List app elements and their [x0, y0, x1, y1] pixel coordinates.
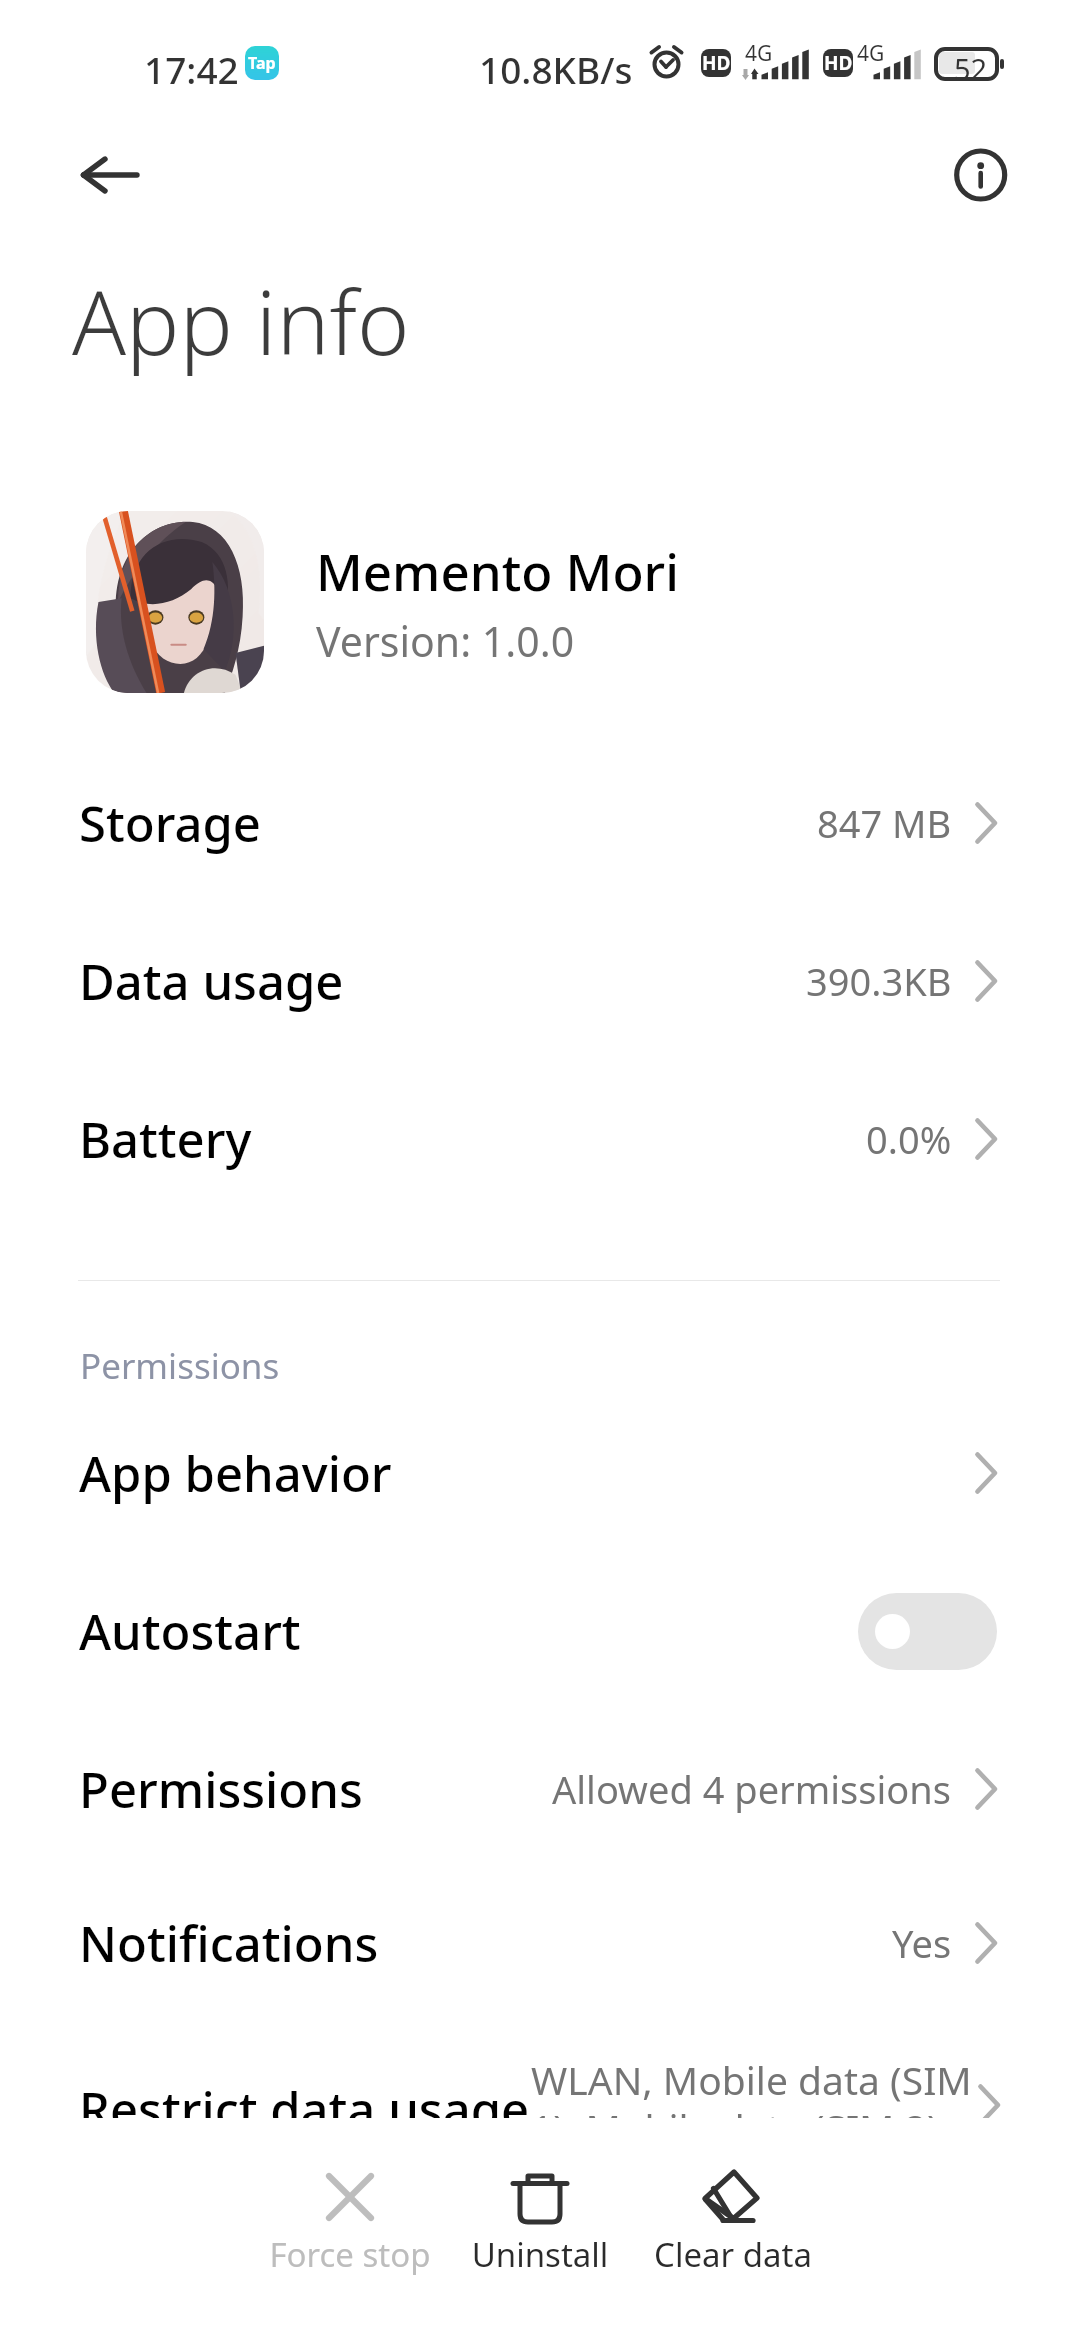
staticText: 4G: [745, 39, 773, 68]
staticText: 17:42: [144, 44, 239, 94]
button[interactable]: Battery: [0, 1060, 1080, 1218]
staticText: Force stop: [255, 2232, 445, 2277]
button[interactable]: Uninstall: [445, 2158, 635, 2308]
staticText: 0.0%: [866, 1113, 952, 1165]
button[interactable]: Clear data: [638, 2158, 828, 2308]
staticText: Notifications: [79, 1910, 379, 1977]
staticText: App behavior: [79, 1440, 392, 1507]
button[interactable]: Autostart: [0, 1552, 1080, 1710]
staticText: 390.3KB: [806, 955, 952, 1007]
staticText: HD: [824, 50, 853, 76]
button[interactable]: App details: [949, 143, 1013, 207]
button[interactable]: Permissions: [0, 1710, 1080, 1868]
staticText: Permissions: [79, 1756, 363, 1823]
staticText: Permissions: [80, 1342, 280, 1390]
staticText: Data usage: [79, 948, 344, 1015]
staticText: Yes: [892, 1917, 952, 1969]
staticText: 52: [951, 49, 990, 88]
staticText: Clear data: [638, 2232, 828, 2277]
button[interactable]: Notifications: [0, 1864, 1080, 2022]
staticText: Version: 1.0.0: [316, 613, 575, 669]
staticText: HD: [702, 50, 731, 76]
staticText: 4G: [857, 39, 885, 68]
button[interactable]: Force stop: [255, 2158, 445, 2308]
staticText: Tap: [248, 52, 276, 74]
staticText: Memento Mori: [316, 536, 679, 605]
staticText: WLAN, Mobile data (SIM 1), Mobile data (…: [531, 2053, 1031, 2154]
button[interactable]: Back: [49, 143, 113, 207]
staticText: Autostart: [79, 1598, 301, 1665]
staticText: Uninstall: [445, 2232, 635, 2277]
staticText: 847 MB: [817, 797, 952, 849]
staticText: Storage: [79, 790, 261, 857]
staticText: Battery: [79, 1106, 252, 1173]
button[interactable]: Restrict data usage: [0, 2030, 1080, 2188]
staticText: App info: [72, 260, 410, 381]
staticText: 10.8KB/s: [479, 44, 633, 94]
button[interactable]: Autostart toggle: [858, 1593, 997, 1670]
staticText: Restrict data usage: [79, 2076, 530, 2143]
button[interactable]: Storage: [0, 744, 1080, 902]
button[interactable]: App behavior: [0, 1394, 1080, 1552]
staticText: Allowed 4 permissions: [552, 1763, 952, 1815]
button[interactable]: Data usage: [0, 902, 1080, 1060]
